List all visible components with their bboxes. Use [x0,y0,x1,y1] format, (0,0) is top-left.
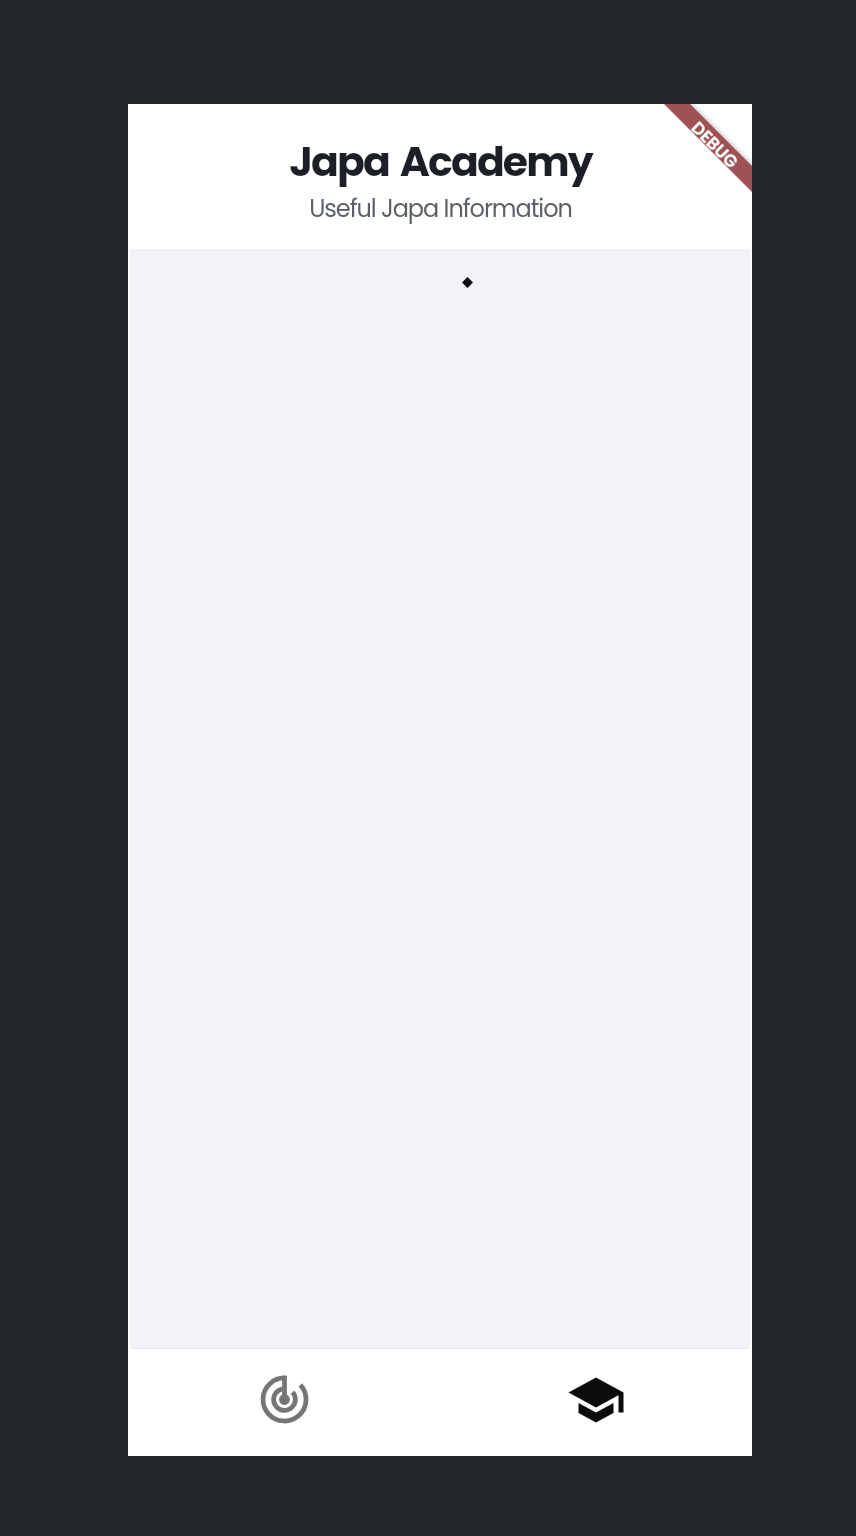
staticText: DEBUG [686,116,744,174]
button[interactable]: Academy [440,1349,752,1456]
button[interactable]: Tracker [128,1349,440,1456]
staticText: Useful Japa Information [309,192,572,226]
staticText: Japa Academy [289,133,592,190]
